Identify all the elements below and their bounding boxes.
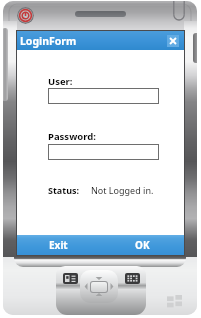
staticText: Status: <box>48 184 80 196</box>
staticText: Password: <box>48 130 96 143</box>
button[interactable]: OK <box>100 235 184 255</box>
button[interactable]: Power <box>17 7 34 24</box>
staticText: Not Logged in. <box>91 184 154 196</box>
staticText: LoginForm <box>20 34 77 48</box>
staticText: Exit <box>49 238 68 252</box>
button[interactable]: Contacts <box>63 273 78 284</box>
button[interactable]: Close <box>167 35 179 47</box>
button[interactable]: Volume <box>3 28 8 101</box>
staticText: User: <box>48 75 73 88</box>
button[interactable]: Exit <box>17 235 100 255</box>
staticText: OK <box>135 238 150 252</box>
button[interactable]: Keypad <box>125 273 140 284</box>
button[interactable]: Camera <box>193 33 197 63</box>
button[interactable]: Navigation pad <box>80 270 118 303</box>
